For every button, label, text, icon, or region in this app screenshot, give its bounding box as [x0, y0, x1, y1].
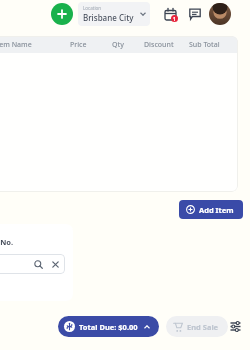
staticText: Price — [70, 40, 87, 50]
staticText: Item Name — [0, 40, 32, 50]
staticText: Qty — [112, 40, 124, 50]
button[interactable]: Messages — [185, 4, 205, 24]
button[interactable] — [0, 254, 65, 274]
staticText: Add Item — [199, 205, 234, 215]
staticText: Ref No. — [0, 237, 14, 247]
staticText: Total Due: $0.00 — [79, 322, 138, 332]
staticText: Brisbane City — [83, 12, 134, 23]
staticText: End Sale — [187, 322, 219, 332]
staticText: Location — [83, 5, 102, 11]
button[interactable]: Total Due: $0.00 — [58, 316, 159, 337]
button[interactable]: Settings — [225, 316, 246, 337]
button[interactable]: End Sale — [166, 316, 228, 337]
button[interactable]: Profile — [209, 3, 231, 25]
staticText: 1 — [173, 16, 176, 22]
button[interactable]: Calendar — [160, 4, 180, 24]
button[interactable]: Add — [51, 3, 73, 25]
staticText: Sub Total — [189, 40, 220, 50]
button[interactable]: Add Item — [179, 200, 243, 219]
button[interactable]: Location — [78, 2, 150, 26]
staticText: Discount — [144, 40, 174, 50]
